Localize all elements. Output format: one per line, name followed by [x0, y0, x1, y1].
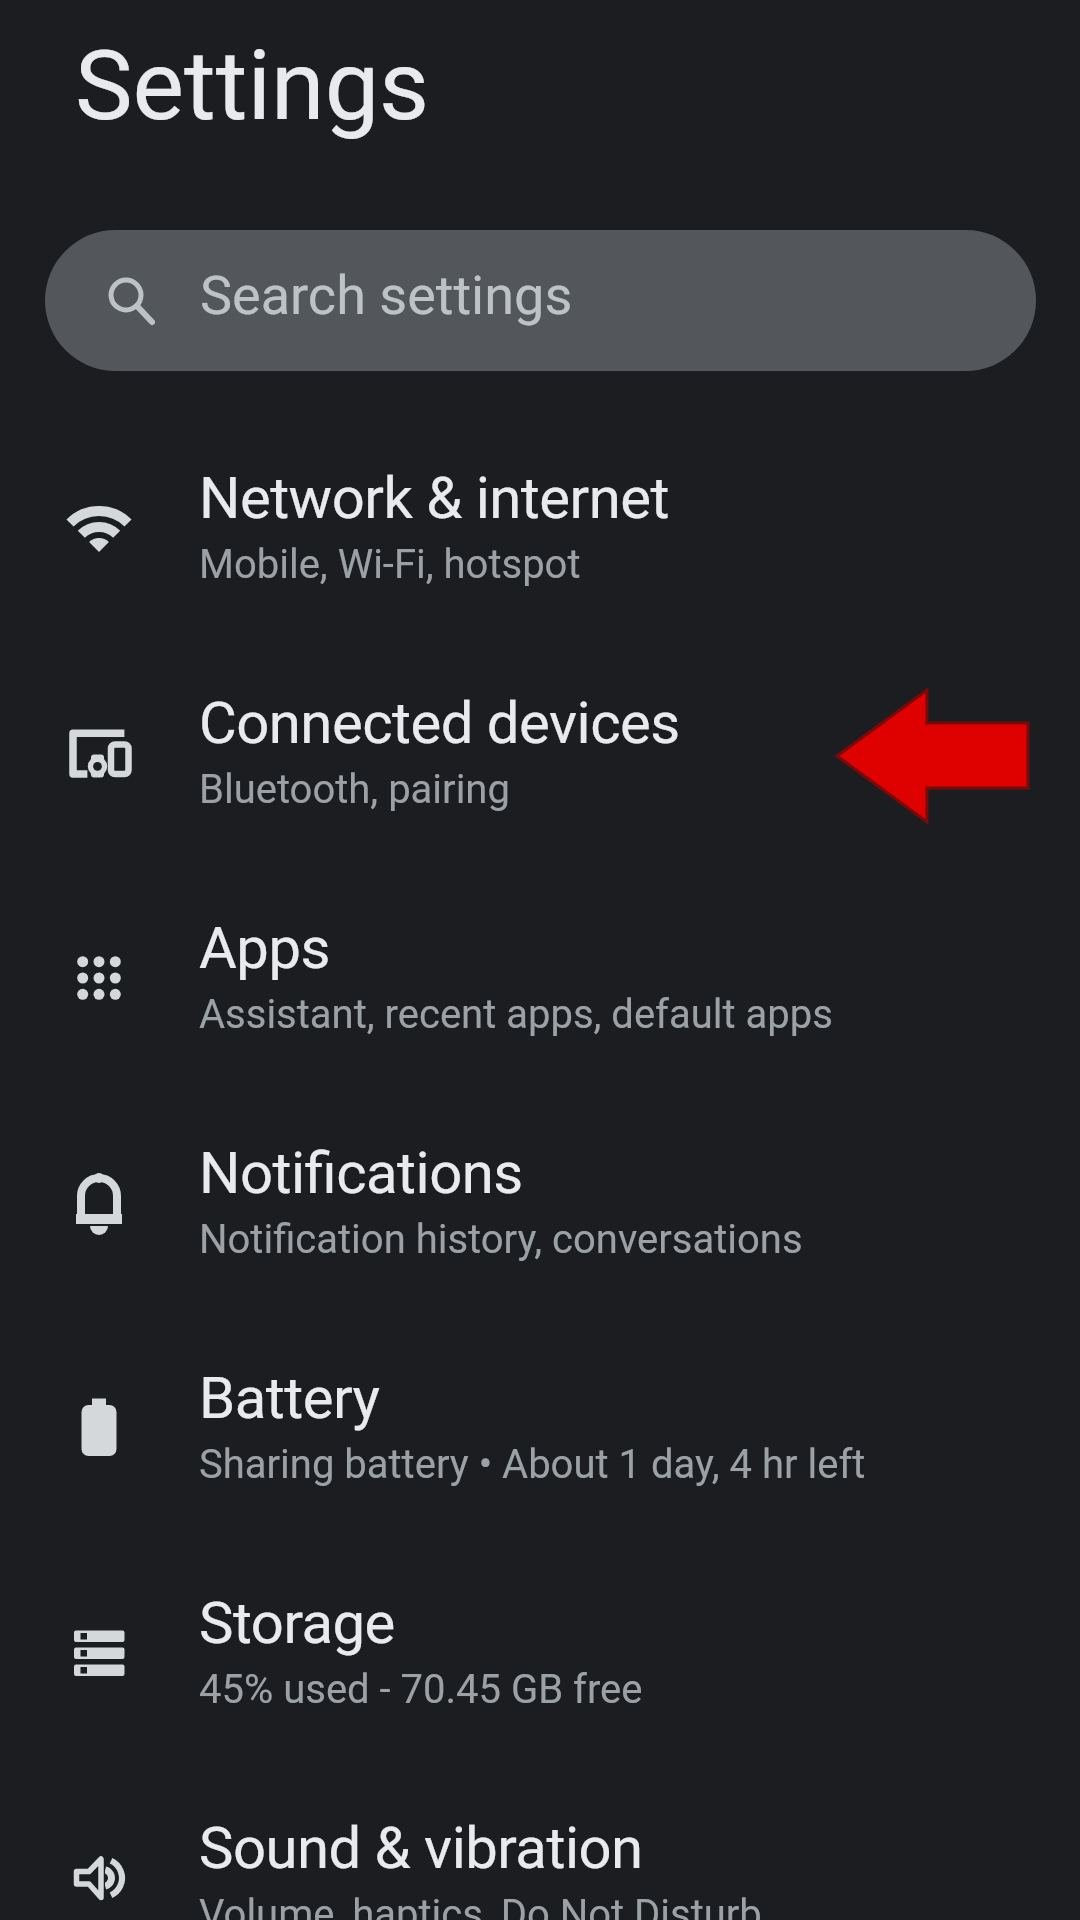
button[interactable]: Battery: [0, 1321, 1080, 1546]
button[interactable]: Notifications: [0, 1096, 1080, 1321]
staticText: Connected devices: [199, 689, 680, 757]
button[interactable]: Network & internet: [0, 421, 1080, 646]
staticText: Bluetooth, pairing: [199, 766, 510, 813]
button[interactable]: Search settings: [45, 230, 1036, 371]
button[interactable]: Connected devices: [0, 646, 1080, 871]
staticText: Sharing battery • About 1 day, 4 hr left: [199, 1441, 866, 1488]
staticText: Notifications: [199, 1139, 523, 1207]
staticText: Apps: [199, 914, 330, 982]
staticText: Assistant, recent apps, default apps: [199, 991, 833, 1038]
staticText: Sound & vibration: [199, 1814, 643, 1882]
staticText: Volume, haptics, Do Not Disturb: [199, 1891, 762, 1920]
staticText: Notification history, conversations: [199, 1216, 803, 1263]
staticText: Network & internet: [199, 464, 669, 532]
staticText: Settings: [75, 29, 430, 143]
button[interactable]: Storage: [0, 1546, 1080, 1771]
button[interactable]: Apps: [0, 871, 1080, 1096]
staticText: 45% used - 70.45 GB free: [199, 1666, 643, 1713]
staticText: Mobile, Wi-Fi, hotspot: [199, 541, 581, 588]
button[interactable]: Sound & vibration: [0, 1771, 1080, 1920]
staticText: Storage: [199, 1589, 395, 1657]
staticText: Search settings: [200, 264, 573, 327]
staticText: Battery: [199, 1364, 380, 1432]
